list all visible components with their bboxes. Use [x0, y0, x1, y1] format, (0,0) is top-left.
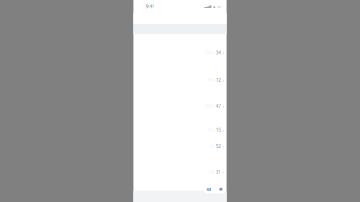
button[interactable]: Four: [0, 194, 360, 202]
button[interactable]: Two: [0, 0, 360, 50]
button[interactable]: Three: [0, 50, 360, 194]
